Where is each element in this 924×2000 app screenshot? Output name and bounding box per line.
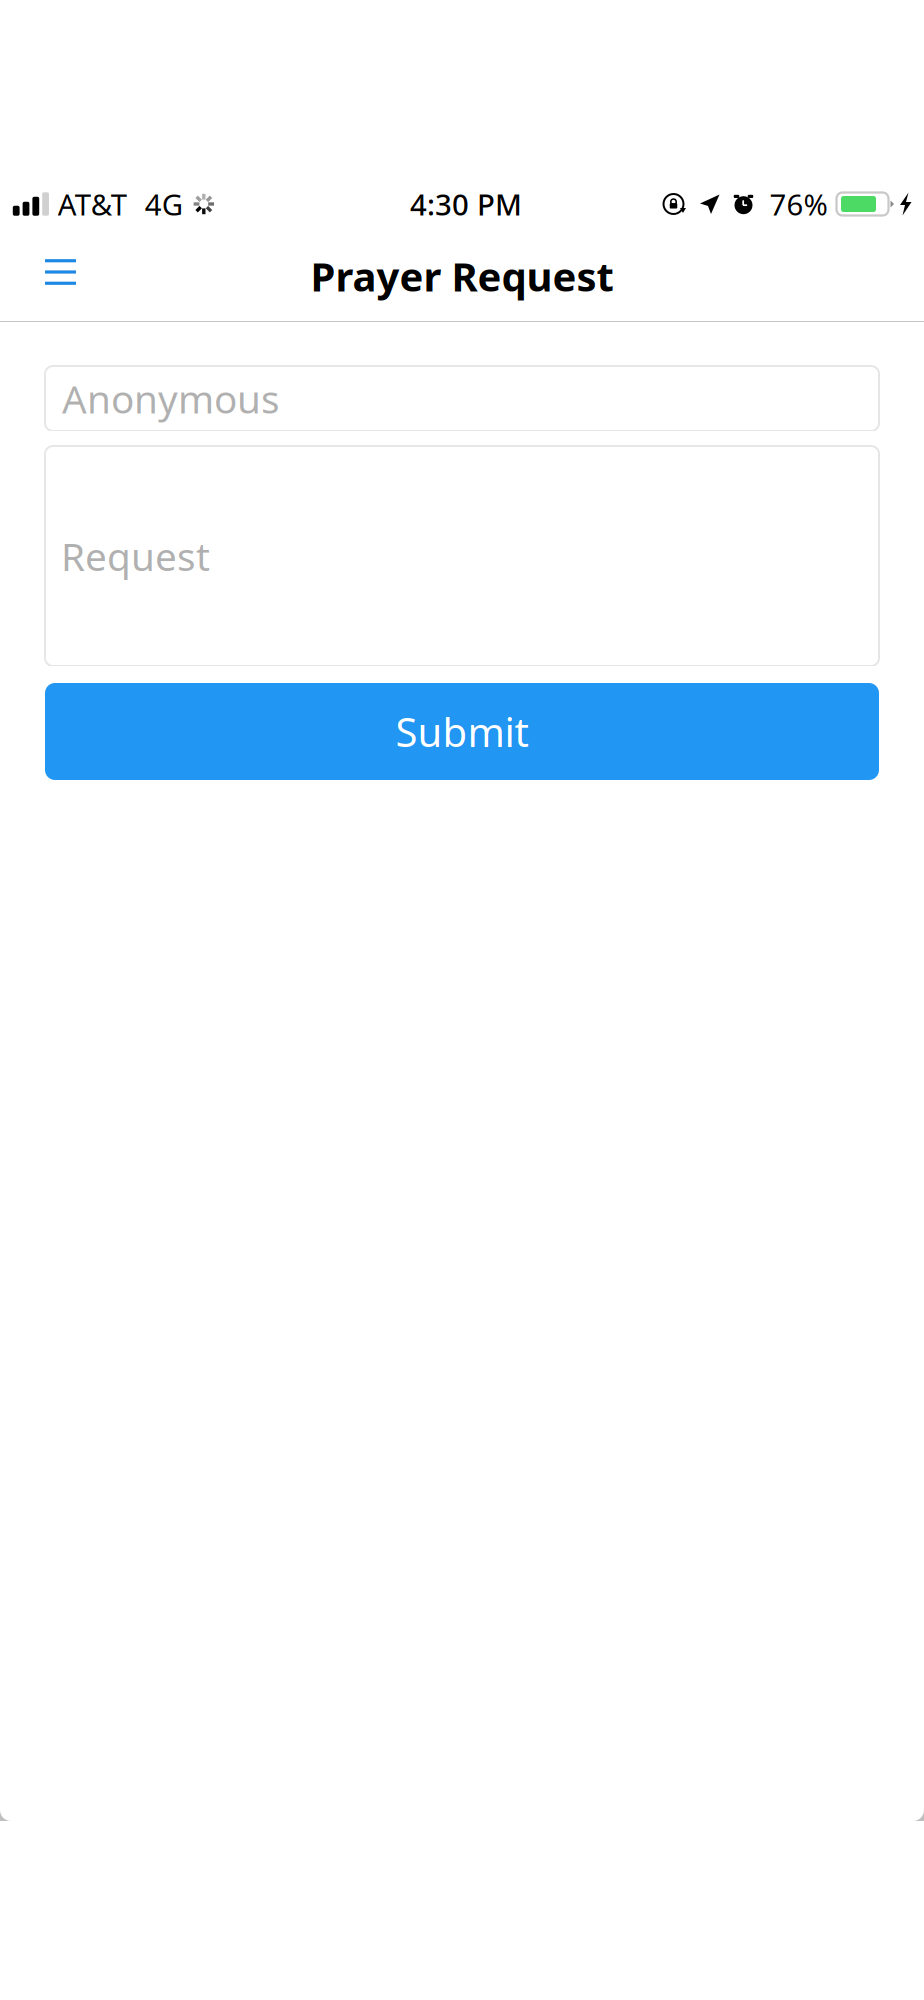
staticText: AT&T: [58, 184, 127, 223]
staticText: 4:30 PM: [410, 184, 522, 223]
staticText: Anonymous: [62, 373, 280, 424]
button[interactable]: Menu: [0, 234, 100, 318]
staticText: Request: [61, 530, 210, 582]
button[interactable]: Submit: [45, 683, 879, 780]
staticText: Prayer Request: [310, 249, 613, 302]
staticText: 76%: [769, 184, 827, 223]
staticText: Submit: [395, 705, 528, 758]
staticText: 4G: [145, 184, 183, 223]
